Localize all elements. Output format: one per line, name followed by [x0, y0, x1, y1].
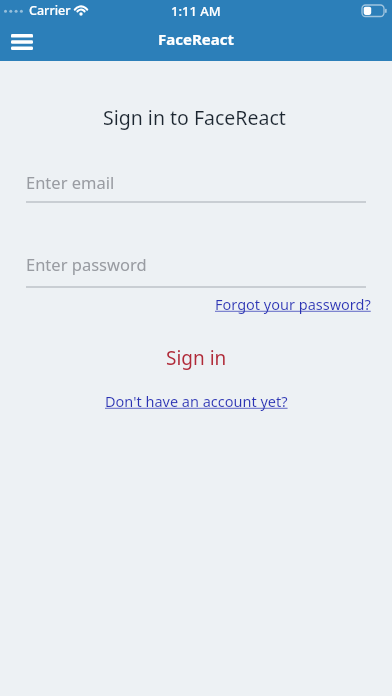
button[interactable]: [3, 26, 41, 58]
button[interactable]: Don't have an account yet?: [105, 391, 288, 411]
button[interactable]: Enter email: [26, 168, 366, 203]
staticText: Enter email: [26, 171, 115, 193]
staticText: Forgot your password?: [215, 294, 371, 314]
staticText: Enter password: [26, 253, 147, 275]
button[interactable]: Enter password: [26, 250, 366, 289]
staticText: Sign in: [166, 345, 227, 371]
staticText: FaceReact: [158, 29, 234, 49]
staticText: 1:11 AM: [171, 2, 221, 20]
staticText: Don't have an account yet?: [105, 391, 288, 411]
staticText: Carrier: [29, 2, 71, 19]
button[interactable]: Forgot your password?: [215, 294, 371, 314]
button[interactable]: Sign in: [166, 345, 227, 371]
staticText: Sign in to FaceReact: [103, 104, 286, 131]
